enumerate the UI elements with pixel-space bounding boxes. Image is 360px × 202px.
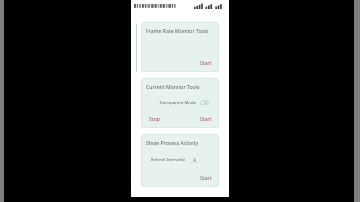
staticText: Stop (149, 116, 160, 123)
staticText: Show Process Activity (146, 139, 199, 146)
staticText: Transparent Mode (159, 99, 197, 105)
button[interactable]: Start (197, 114, 215, 125)
button[interactable]: Start (197, 58, 215, 69)
staticText: Current Monitor Tools (146, 83, 200, 90)
staticText: Frame Rate Monitor Tools (146, 27, 209, 34)
staticText: 4 (193, 157, 196, 163)
staticText: Start (200, 175, 212, 182)
staticText: Start (200, 116, 212, 123)
button[interactable]: Transparent Mode (146, 99, 215, 105)
staticText: Start (200, 60, 212, 67)
button[interactable]: Transparent Mode toggle (200, 100, 209, 105)
button[interactable]: Refresh interval value (190, 156, 199, 163)
button[interactable]: Start (197, 173, 215, 184)
button[interactable]: Stop (146, 114, 163, 125)
staticText: Refresh Interval(s) (151, 157, 186, 162)
